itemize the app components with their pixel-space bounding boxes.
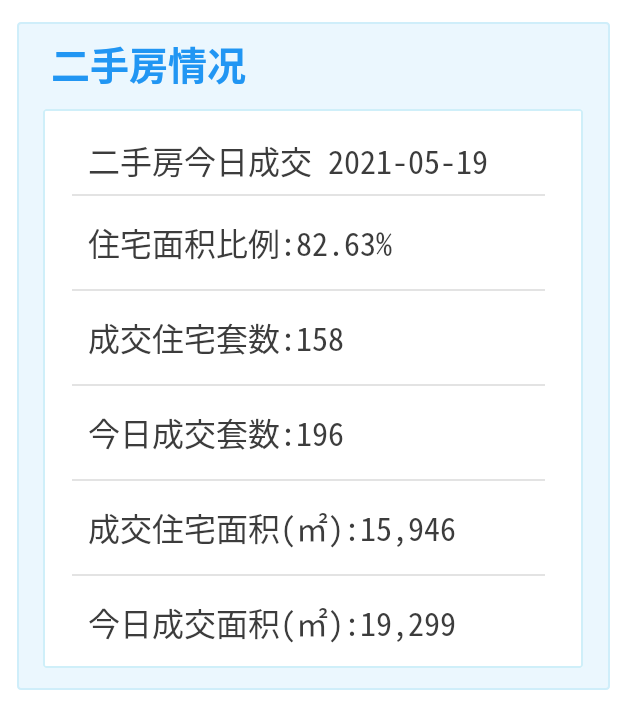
staticText: 成交住宅套数:158 <box>88 314 345 360</box>
button[interactable]: 二手房今日成交 2021-05-19 <box>43 109 583 194</box>
button[interactable]: 成交住宅套数:158 <box>43 289 583 384</box>
button[interactable]: 今日成交套数:196 <box>43 384 583 479</box>
button[interactable]: 成交住宅面积(㎡):15,946 <box>43 479 583 574</box>
button[interactable]: 住宅面积比例:82.63% <box>43 194 583 289</box>
button[interactable]: 二手房情况 <box>45 33 253 93</box>
staticText: 今日成交套数:196 <box>88 409 345 455</box>
staticText: 今日成交面积(㎡):19,299 <box>88 599 457 645</box>
staticText: 二手房情况 <box>51 35 247 91</box>
staticText: 住宅面积比例:82.63% <box>88 219 393 265</box>
staticText: 成交住宅面积(㎡):15,946 <box>88 504 457 550</box>
button[interactable]: 今日成交面积(㎡):19,299 <box>43 574 583 668</box>
staticText: 二手房今日成交 2021-05-19 <box>88 137 489 183</box>
